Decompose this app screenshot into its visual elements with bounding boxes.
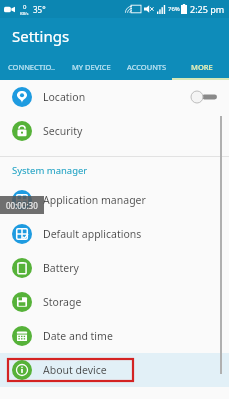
button[interactable]: Default applications <box>0 217 229 251</box>
staticText: 00:00:30 <box>6 200 38 211</box>
button[interactable]: Application manager <box>0 183 229 217</box>
button[interactable]: MY DEVICE <box>64 54 119 80</box>
staticText: MY DEVICE <box>72 62 111 72</box>
button[interactable]: ACCOUNTS <box>119 54 174 80</box>
button[interactable]: MORE <box>174 54 229 80</box>
staticText: CONNECTIO.. <box>8 62 56 72</box>
staticText: Application manager <box>43 193 146 207</box>
staticText: Location <box>43 90 86 104</box>
staticText: Date and time <box>43 329 113 343</box>
button[interactable]: Date and time <box>0 319 229 353</box>
staticText: 35° <box>33 4 46 15</box>
button[interactable]: CONNECTIO.. <box>0 54 64 80</box>
button[interactable]: Storage <box>0 285 229 319</box>
button[interactable]: About device <box>0 353 229 387</box>
staticText: 0 <box>23 3 27 11</box>
staticText: Security <box>43 124 83 138</box>
staticText: System manager <box>12 164 88 177</box>
staticText: 76% <box>168 5 180 13</box>
staticText: Settings <box>12 26 70 46</box>
button[interactable]: Location <box>0 80 229 114</box>
staticText: Storage <box>43 295 82 309</box>
staticText: ACCOUNTS <box>127 62 167 72</box>
button[interactable]: Location toggle <box>191 91 217 103</box>
button[interactable]: Security <box>0 114 229 148</box>
staticText: MORE <box>191 62 213 72</box>
staticText: 2:25 pm <box>190 3 225 15</box>
staticText: KB/s <box>20 11 29 16</box>
staticText: About device <box>43 363 107 377</box>
staticText: Battery <box>43 261 79 275</box>
staticText: Default applications <box>43 227 142 241</box>
button[interactable]: Battery <box>0 251 229 285</box>
